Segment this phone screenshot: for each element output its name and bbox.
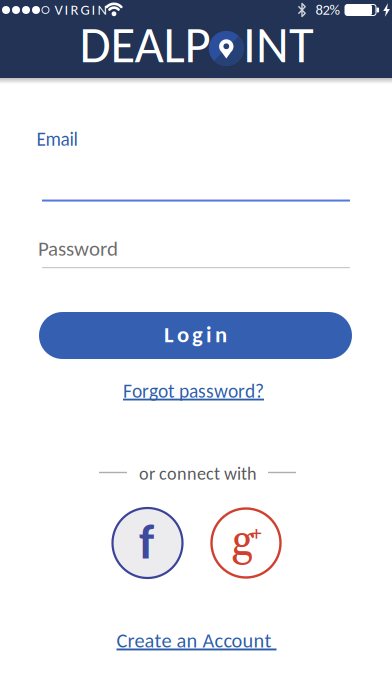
- staticText: V I R G I N: [54, 1, 106, 19]
- staticText: f: [139, 513, 154, 571]
- staticText: +: [250, 521, 263, 547]
- staticText: 82%: [315, 1, 339, 19]
- staticText: Forgot password?: [123, 379, 264, 403]
- button[interactable]: Forgot password?: [123, 379, 264, 403]
- button[interactable]: Password: [42, 236, 350, 268]
- staticText: Create an Account: [116, 628, 276, 653]
- staticText: DEALP: [79, 14, 210, 76]
- staticText: Password: [38, 236, 118, 261]
- button[interactable]: Email: [42, 127, 350, 201]
- staticText: INT: [243, 14, 314, 76]
- button[interactable]: L o g i n: [39, 312, 352, 359]
- staticText: or connect with: [139, 462, 257, 484]
- button[interactable]: Sign in with Facebook: [112, 508, 182, 578]
- button[interactable]: Sign in with Google: [211, 508, 280, 577]
- button[interactable]: Create an Account: [116, 628, 276, 653]
- staticText: L o g i n: [164, 321, 227, 348]
- staticText: g: [231, 514, 253, 570]
- staticText: Email: [36, 127, 77, 151]
